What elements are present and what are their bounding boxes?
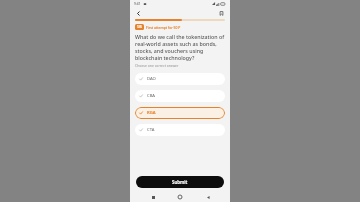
staticText: 9:41 [134,2,141,6]
staticText: CBA [147,93,156,99]
button[interactable]: DAO [135,73,225,85]
staticText: First attempt for 50 P [146,25,181,30]
button[interactable]: Bookmark [217,9,226,18]
staticText: Submit [172,179,188,185]
button[interactable]: Back [203,192,213,202]
button[interactable]: Back [134,9,143,18]
staticText: RGA [147,110,156,116]
staticText: Choose one correct answer [135,63,179,68]
button[interactable]: CTA [135,124,225,136]
button[interactable]: CBA [135,90,225,102]
staticText: 1/5 [137,25,142,29]
button[interactable]: Submit [136,176,224,188]
button[interactable]: RGA [135,107,225,119]
staticText: CTA [147,127,155,133]
button[interactable]: Home [175,192,185,202]
staticText: DAO [147,76,156,82]
staticText: What do we call the tokenization of real… [135,33,225,61]
button[interactable]: Recent apps [148,192,158,202]
